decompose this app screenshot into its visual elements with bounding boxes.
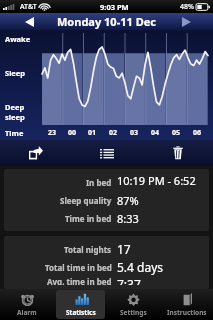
staticText: 00 — [68, 128, 77, 138]
staticText: In bed — [86, 177, 112, 188]
staticText: 01 — [88, 128, 97, 138]
staticText: Instructions — [167, 308, 207, 317]
button[interactable]: Share — [0, 140, 71, 166]
button[interactable]: Total nights — [4, 236, 209, 289]
staticText: 7:37 — [117, 276, 141, 285]
staticText: Statistics — [66, 308, 96, 317]
staticText: Monday 10-11 Dec — [57, 14, 156, 29]
staticText: Time in bed — [65, 213, 112, 224]
staticText: Settings — [120, 308, 147, 317]
staticText: AT&T — [20, 2, 37, 12]
button[interactable]: In bed — [4, 169, 209, 231]
staticText: 03 — [130, 128, 139, 138]
staticText: 17 — [117, 241, 131, 257]
staticText: sleep — [5, 112, 25, 122]
staticText: Total time in bed — [45, 262, 112, 273]
staticText: 48% — [180, 2, 194, 12]
button[interactable]: Previous day — [20, 13, 38, 30]
button[interactable]: Next day — [177, 13, 195, 30]
staticText: 02 — [109, 128, 118, 138]
button[interactable]: Alarm — [0, 289, 54, 320]
staticText: 87% — [117, 193, 139, 208]
staticText: Sleep — [5, 68, 26, 78]
staticText: 9:03 PM — [100, 2, 129, 12]
button[interactable]: Instructions — [160, 289, 213, 320]
staticText: Deep — [5, 102, 25, 112]
staticText: 05 — [172, 128, 181, 138]
button[interactable]: List — [71, 140, 142, 166]
staticText: 5.4 days — [117, 259, 164, 275]
staticText: 06 — [193, 128, 202, 138]
staticText: 04 — [151, 128, 160, 138]
button[interactable]: Settings — [107, 289, 160, 320]
staticText: Avg. time in bed — [47, 276, 112, 285]
staticText: Alarm — [17, 308, 37, 317]
staticText: Total nights — [64, 244, 112, 255]
staticText: 8:33 — [117, 211, 139, 226]
button[interactable]: Statistics — [56, 290, 105, 319]
staticText: Awake — [5, 34, 31, 44]
staticText: Sleep quality — [60, 195, 112, 206]
staticText: 23 — [48, 128, 57, 138]
staticText: Time — [5, 128, 24, 138]
staticText: 10:19 PM - 6:52 AM — [117, 173, 209, 191]
button[interactable]: Delete — [142, 140, 213, 166]
